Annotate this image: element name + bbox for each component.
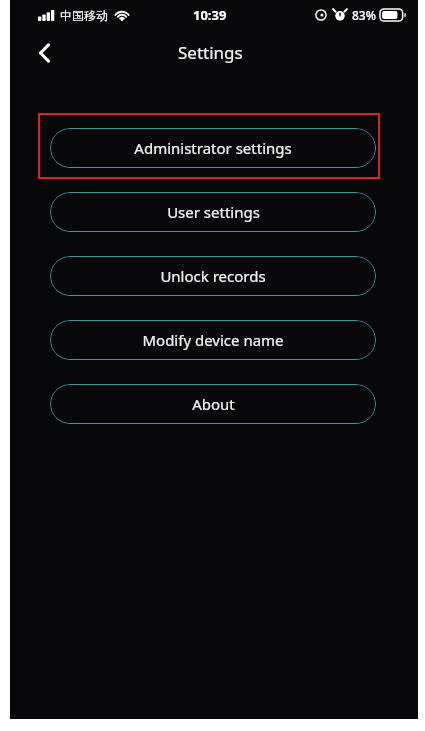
staticText: Modify device name	[142, 330, 284, 350]
staticText: Settings	[178, 41, 243, 64]
button[interactable]: User settings	[50, 192, 376, 232]
staticText: Administrator settings	[134, 138, 292, 158]
button[interactable]: Unlock records	[50, 256, 376, 296]
staticText: User settings	[167, 202, 260, 222]
staticText: About	[192, 394, 235, 414]
staticText: 中国移动	[60, 8, 108, 23]
button[interactable]: Modify device name	[50, 320, 376, 360]
button[interactable]: About	[50, 384, 376, 424]
staticText: 83%	[352, 7, 376, 23]
staticText: Unlock records	[160, 266, 266, 286]
button[interactable]: Administrator settings	[50, 128, 376, 168]
staticText: 10:39	[193, 6, 227, 24]
button[interactable]: Back	[23, 32, 65, 74]
